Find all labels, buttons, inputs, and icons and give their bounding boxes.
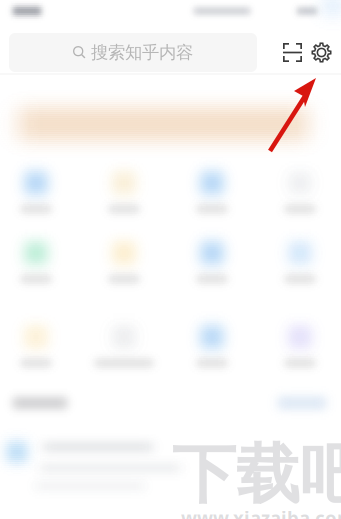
staticText: 下载吧 (172, 435, 341, 514)
staticText: 搜索知乎内容 (91, 42, 193, 63)
button[interactable]: Scan QR code (283, 43, 302, 62)
button[interactable]: Settings (311, 42, 332, 63)
button[interactable]: 搜索知乎内容 (9, 33, 257, 72)
staticText: www.xiazaiba.com (181, 506, 341, 519)
